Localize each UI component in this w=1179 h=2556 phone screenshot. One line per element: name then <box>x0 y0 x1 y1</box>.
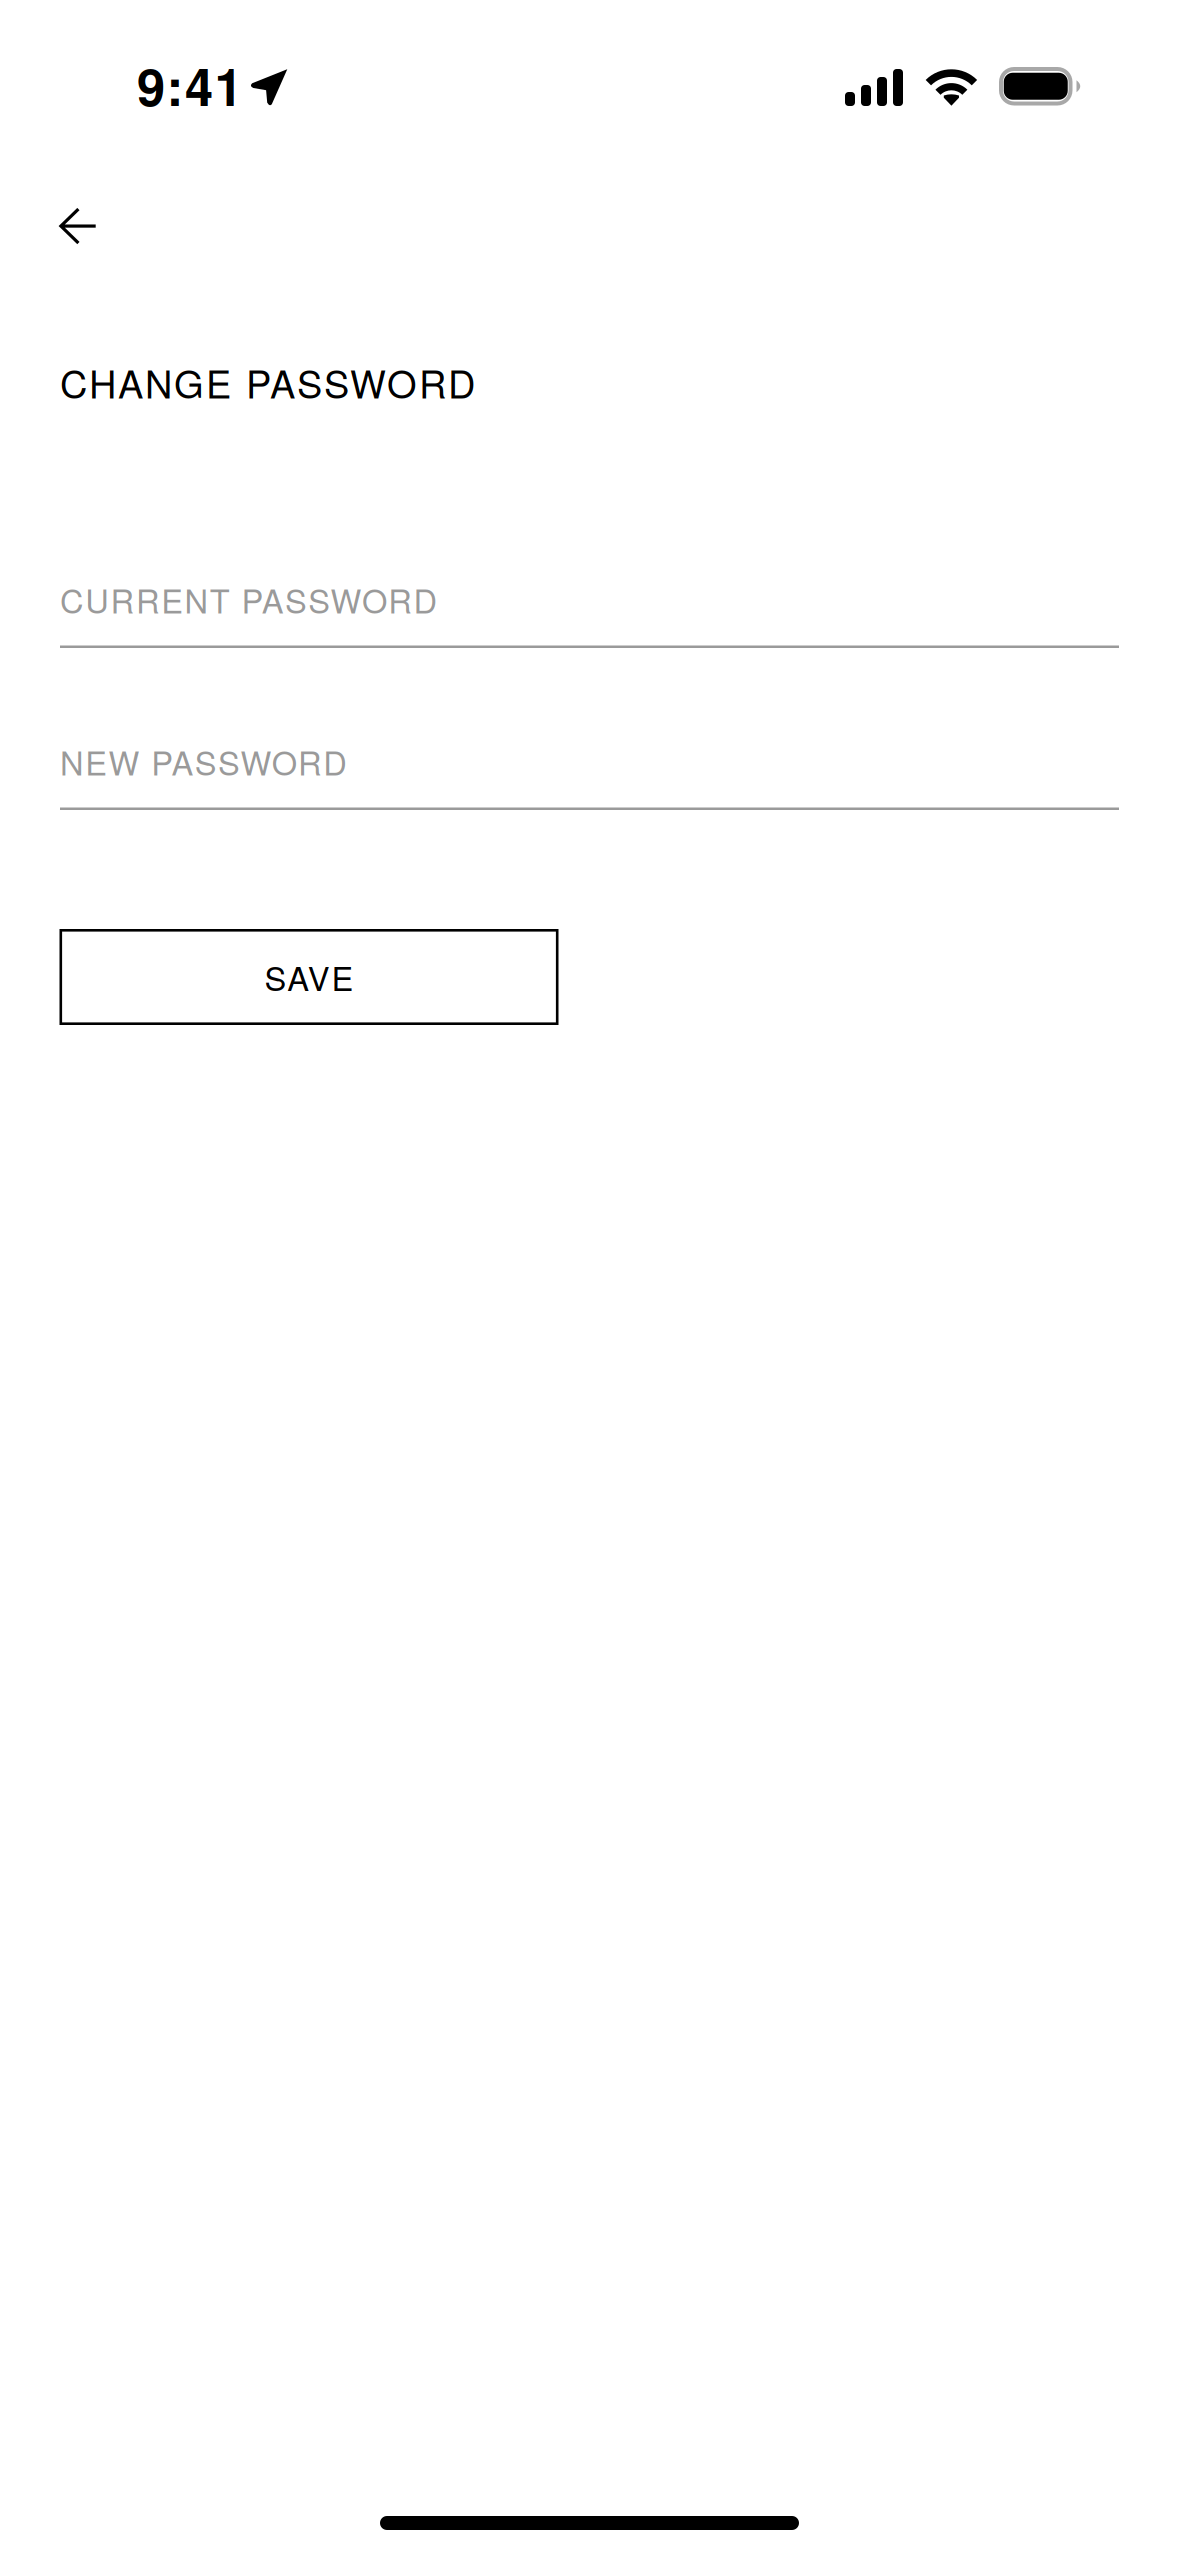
staticText: CURRENT PASSWORD <box>60 576 437 623</box>
staticText: 9:41 <box>137 49 242 122</box>
button[interactable]: CURRENT PASSWORD <box>60 576 1119 648</box>
button[interactable]: Back <box>24 172 132 280</box>
button[interactable]: NEW PASSWORD <box>60 738 1119 810</box>
staticText: CHANGE PASSWORD <box>60 355 475 409</box>
button[interactable]: SAVE <box>59 929 558 1025</box>
staticText: NEW PASSWORD <box>60 738 347 785</box>
staticText: SAVE <box>265 954 353 1000</box>
